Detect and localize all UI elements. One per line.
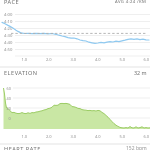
button[interactable] <box>0 0 150 150</box>
